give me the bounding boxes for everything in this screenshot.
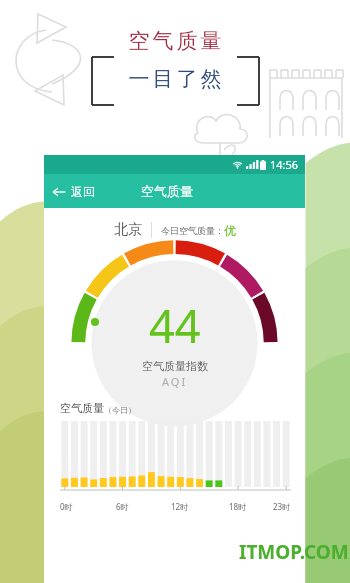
staticText: 0时 — [60, 501, 73, 512]
other: Back — [52, 185, 66, 199]
staticText: 空气质量 — [127, 28, 223, 54]
staticText: 优 — [224, 223, 236, 238]
staticText: 一目了然 — [127, 66, 223, 92]
staticText: 返回 — [71, 184, 95, 199]
button[interactable]: Back — [44, 178, 105, 205]
staticText: 空气质量 — [141, 183, 193, 199]
staticText: 12时 — [171, 501, 189, 512]
staticText: 6时 — [116, 501, 129, 512]
staticText: ITMOP.COM — [239, 539, 349, 565]
staticText: 北京 — [114, 221, 142, 239]
staticText: 空气质量 — [60, 401, 104, 415]
staticText: 44 — [149, 295, 201, 356]
staticText: 今日空气质量： — [161, 225, 224, 236]
staticText: 空气质量指数 — [142, 359, 208, 373]
staticText: AQI — [162, 374, 188, 389]
staticText: 18时 — [229, 501, 247, 512]
staticText: 23时 — [273, 501, 291, 512]
staticText: （今日） — [104, 405, 136, 415]
staticText: 14:56 — [270, 157, 299, 172]
